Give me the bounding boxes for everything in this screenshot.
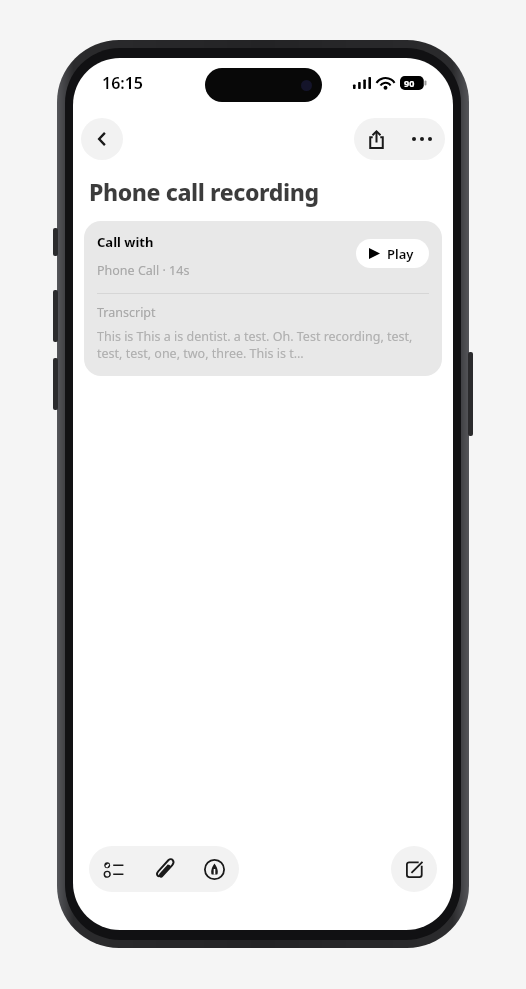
staticText: 16:15 [102,72,144,94]
staticText: Phone call recording [89,176,319,207]
button[interactable]: Attach file [139,846,189,892]
button[interactable]: Call with [84,221,442,376]
staticText: Call with [97,233,154,251]
staticText: 90 [404,77,415,89]
button[interactable]: Checklist [89,846,139,892]
button[interactable]: Back [81,118,123,160]
staticText: Transcript [97,304,156,321]
button[interactable]: Compose [391,846,437,892]
button[interactable]: More options [399,118,445,160]
staticText: Phone Call · 14s [97,262,190,279]
staticText: This is This a is dentist. a test. Oh. T… [97,328,429,362]
staticText: Play [387,245,414,263]
button[interactable]: Draw [189,846,239,892]
button[interactable]: Play [356,239,429,268]
button[interactable]: Share [354,118,399,160]
